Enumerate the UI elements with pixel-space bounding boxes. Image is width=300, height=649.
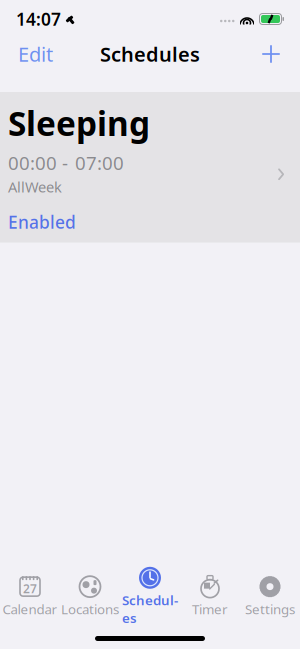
button[interactable]: Timer [180,569,240,620]
button[interactable]: Sleeping [0,92,300,242]
staticText: Calendar [2,600,57,618]
staticText: 07:00 [70,150,124,175]
staticText: AllWeek [8,177,62,197]
button[interactable]: Add schedule [256,39,286,69]
button[interactable]: Edit [14,35,57,73]
button[interactable]: Locations [60,569,120,620]
staticText: Enabled [8,210,76,233]
staticText: Timer [192,600,228,618]
staticText: Settings [245,600,295,618]
staticText: Sleeping [8,101,150,145]
staticText: Schedules [122,591,178,627]
button[interactable]: Schedules [120,560,180,629]
button[interactable]: 27 [0,569,60,620]
staticText: Locations [61,600,119,618]
staticText: 14:07 [16,7,61,30]
staticText: 00:00 - [8,150,68,175]
staticText: Edit [18,41,53,67]
button[interactable]: Settings [240,569,300,620]
staticText: Schedules [100,41,200,67]
staticText: 27 [23,581,37,597]
